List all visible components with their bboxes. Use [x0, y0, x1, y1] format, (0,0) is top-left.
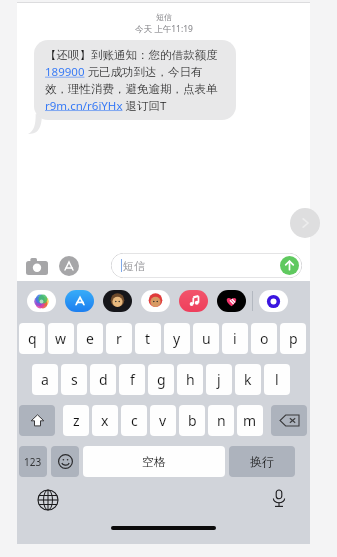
button[interactable]: r [106, 323, 132, 354]
button[interactable]: x [92, 405, 118, 436]
staticText: 空格 [142, 454, 166, 469]
staticText: i [233, 329, 237, 348]
button[interactable]: y [164, 323, 190, 354]
button[interactable]: Send [280, 256, 299, 275]
button[interactable]: s [61, 364, 87, 395]
staticText: 今天 上午11:19 [135, 23, 193, 35]
button[interactable]: 换行 [229, 446, 295, 477]
button[interactable]: m [237, 405, 263, 436]
staticText: o [260, 329, 269, 348]
button[interactable]: j [206, 364, 232, 395]
button[interactable]: w [48, 323, 74, 354]
button[interactable]: o [251, 323, 277, 354]
staticText: k [244, 370, 252, 389]
staticText: w [55, 329, 67, 348]
button[interactable]: c [121, 405, 147, 436]
button[interactable]: i [222, 323, 248, 354]
button[interactable]: z [63, 405, 89, 436]
button[interactable]: g [148, 364, 174, 395]
button[interactable]: e [77, 323, 103, 354]
button[interactable]: l [264, 364, 290, 395]
button[interactable]: Emoji [51, 446, 79, 477]
staticText: m [243, 411, 257, 430]
staticText: n [217, 411, 226, 430]
button[interactable]: App Store [59, 256, 79, 276]
staticText: t [145, 329, 151, 348]
button[interactable]: App [65, 290, 94, 312]
staticText: r [116, 329, 122, 348]
button[interactable]: q [19, 323, 45, 354]
button[interactable]: Camera [26, 257, 48, 275]
button[interactable]: App [179, 290, 208, 312]
button[interactable]: k [235, 364, 261, 395]
button[interactable]: App [259, 290, 288, 312]
button[interactable]: p [280, 323, 306, 354]
button[interactable]: App [217, 290, 246, 312]
staticText: 123 [24, 455, 42, 469]
button[interactable]: t [135, 323, 161, 354]
staticText: e [86, 329, 94, 348]
staticText: l [275, 370, 279, 389]
staticText: u [202, 329, 211, 348]
staticText: c [131, 411, 138, 430]
button[interactable]: Backspace [271, 405, 307, 436]
button[interactable]: Change keyboard [37, 489, 59, 511]
staticText: d [99, 370, 108, 389]
button[interactable]: n [208, 405, 234, 436]
staticText: v [159, 411, 167, 430]
button[interactable]: Dictation [269, 488, 289, 508]
staticText: q [28, 329, 37, 348]
button[interactable]: h [177, 364, 203, 395]
button[interactable]: f [119, 364, 145, 395]
button[interactable]: Scroll to bottom [290, 208, 320, 238]
staticText: 短信 [123, 259, 145, 273]
button[interactable]: d [90, 364, 116, 395]
staticText: j [217, 370, 221, 389]
button[interactable]: App [27, 290, 56, 312]
staticText: x [101, 411, 109, 430]
staticText: s [71, 370, 78, 389]
staticText: y [173, 329, 181, 348]
button[interactable]: 123 [19, 446, 47, 477]
button[interactable]: 【还呗】到账通知：您的借款额度 189900 元已成功到达，今日有效，理性消费，… [34, 40, 236, 120]
staticText: 换行 [250, 454, 274, 469]
staticText: 【还呗】到账通知：您的借款额度 189900 元已成功到达，今日有效，理性消费，… [45, 47, 225, 113]
staticText: z [73, 411, 80, 430]
button[interactable]: Shift [19, 405, 55, 436]
staticText: a [41, 370, 49, 389]
staticText: h [186, 370, 195, 389]
button[interactable]: b [179, 405, 205, 436]
staticText: 短信 [156, 12, 172, 22]
button[interactable]: u [193, 323, 219, 354]
button[interactable]: App [141, 290, 170, 312]
button[interactable]: 短信 [111, 253, 302, 278]
button[interactable]: v [150, 405, 176, 436]
staticText: f [130, 370, 135, 389]
staticText: b [188, 411, 197, 430]
button[interactable]: 空格 [83, 446, 225, 477]
staticText: p [289, 329, 298, 348]
staticText: g [157, 370, 166, 389]
button[interactable]: a [32, 364, 58, 395]
button[interactable]: App [103, 290, 132, 312]
